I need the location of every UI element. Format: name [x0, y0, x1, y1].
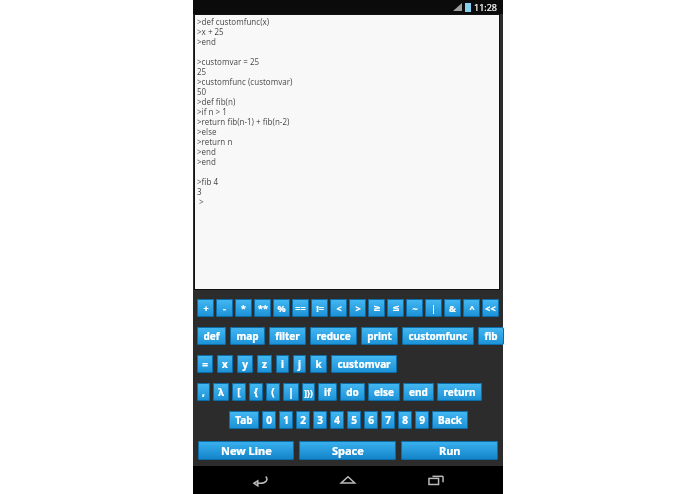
- staticText: ,: [202, 385, 205, 399]
- staticText: 0: [266, 413, 272, 427]
- button[interactable]: def: [197, 327, 226, 345]
- button[interactable]: ,: [197, 383, 210, 401]
- staticText: >def customfunc(x) >x + 25 >end >customv…: [197, 16, 293, 207]
- staticText: +: [203, 302, 209, 314]
- button[interactable]: [: [232, 383, 246, 401]
- staticText: 1: [283, 413, 289, 427]
- button[interactable]: -: [216, 299, 233, 317]
- staticText: fib: [484, 329, 498, 343]
- staticText: else: [374, 385, 394, 399]
- staticText: Space: [332, 443, 364, 458]
- staticText: ≥: [373, 303, 381, 313]
- staticText: 5: [351, 413, 357, 427]
- button[interactable]: New Line: [198, 441, 294, 460]
- staticText: ==: [295, 302, 306, 314]
- staticText: 9: [419, 413, 425, 427]
- staticText: %: [277, 302, 286, 314]
- staticText: ]}): [304, 387, 313, 398]
- staticText: end: [409, 385, 428, 399]
- staticText: j: [298, 357, 301, 371]
- button[interactable]: %: [273, 299, 290, 317]
- staticText: *: [241, 302, 246, 314]
- button[interactable]: !=: [311, 299, 328, 317]
- button[interactable]: 5: [347, 411, 361, 429]
- button[interactable]: 0: [262, 411, 276, 429]
- button[interactable]: &: [444, 299, 461, 317]
- button[interactable]: 6: [364, 411, 378, 429]
- button[interactable]: fib: [478, 327, 504, 345]
- button[interactable]: reduce: [310, 327, 357, 345]
- staticText: [: [237, 385, 241, 399]
- button[interactable]: λ: [213, 383, 229, 401]
- button[interactable]: y: [237, 355, 253, 373]
- button[interactable]: 4: [330, 411, 344, 429]
- staticText: 3: [317, 413, 323, 427]
- button[interactable]: |: [283, 383, 299, 401]
- button[interactable]: z: [257, 355, 272, 373]
- staticText: Run: [439, 443, 461, 458]
- button[interactable]: Home: [328, 466, 368, 494]
- staticText: k: [315, 357, 322, 371]
- button[interactable]: else: [368, 383, 400, 401]
- staticText: print: [367, 329, 392, 343]
- button[interactable]: if: [318, 383, 337, 401]
- button[interactable]: customfunc: [402, 327, 474, 345]
- button[interactable]: do: [340, 383, 365, 401]
- button[interactable]: *: [235, 299, 252, 317]
- button[interactable]: map: [230, 327, 265, 345]
- button[interactable]: print: [361, 327, 398, 345]
- button[interactable]: 3: [313, 411, 327, 429]
- staticText: Back: [438, 413, 462, 427]
- button[interactable]: Tab: [229, 411, 259, 429]
- button[interactable]: Back: [241, 466, 281, 494]
- button[interactable]: |: [425, 299, 442, 317]
- staticText: map: [236, 329, 259, 343]
- staticText: &: [449, 302, 456, 314]
- button[interactable]: filter: [269, 327, 306, 345]
- button[interactable]: <: [330, 299, 347, 317]
- staticText: x: [222, 357, 228, 371]
- button[interactable]: Back: [432, 411, 468, 429]
- button[interactable]: j: [293, 355, 306, 373]
- button[interactable]: {: [249, 383, 263, 401]
- button[interactable]: customvar: [331, 355, 397, 373]
- button[interactable]: x: [217, 355, 233, 373]
- staticText: return: [443, 385, 476, 399]
- button[interactable]: return: [437, 383, 482, 401]
- staticText: 8: [402, 413, 408, 427]
- button[interactable]: +: [197, 299, 214, 317]
- button[interactable]: ]}): [302, 383, 315, 401]
- button[interactable]: end: [403, 383, 434, 401]
- button[interactable]: <<: [482, 299, 499, 317]
- staticText: -: [223, 302, 226, 314]
- button[interactable]: ==: [292, 299, 309, 317]
- button[interactable]: ≤: [387, 299, 404, 317]
- staticText: <<: [485, 302, 496, 314]
- button[interactable]: 2: [296, 411, 310, 429]
- staticText: i: [281, 357, 284, 371]
- button[interactable]: Recents: [416, 466, 456, 494]
- staticText: def: [203, 329, 220, 343]
- staticText: do: [346, 385, 359, 399]
- staticText: 4: [334, 413, 340, 427]
- button[interactable]: (: [266, 383, 280, 401]
- button[interactable]: Space: [299, 441, 396, 460]
- staticText: 6: [368, 413, 374, 427]
- button[interactable]: >: [349, 299, 366, 317]
- button[interactable]: 7: [381, 411, 395, 429]
- button[interactable]: ~: [406, 299, 423, 317]
- button[interactable]: **: [254, 299, 271, 317]
- staticText: 7: [385, 413, 391, 427]
- button[interactable]: =: [197, 355, 213, 373]
- button[interactable]: k: [310, 355, 327, 373]
- button[interactable]: Run: [401, 441, 498, 460]
- button[interactable]: 8: [398, 411, 412, 429]
- button[interactable]: ≥: [368, 299, 385, 317]
- button[interactable]: ^: [463, 299, 480, 317]
- button[interactable]: 1: [279, 411, 293, 429]
- staticText: >: [355, 302, 361, 314]
- staticText: **: [258, 302, 268, 314]
- staticText: ~: [412, 302, 418, 314]
- button[interactable]: 9: [415, 411, 429, 429]
- button[interactable]: i: [276, 355, 289, 373]
